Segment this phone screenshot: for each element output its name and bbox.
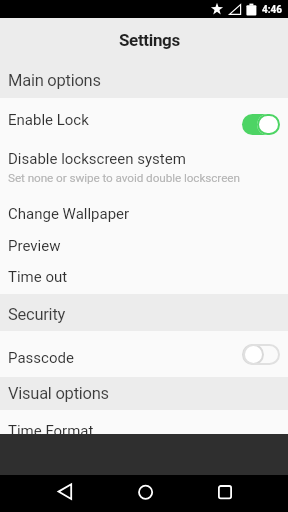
button[interactable]: Change Wallpaper [0,196,288,232]
staticText: 4:46 [262,4,283,16]
staticText: Change Wallpaper [8,205,130,223]
staticText: Set none or swipe to avoid double locksc… [8,171,240,185]
staticText: Time Format [8,422,94,434]
staticText: Settings [119,30,180,50]
staticText: Passcode [8,349,74,367]
button[interactable] [0,475,96,512]
button[interactable] [96,475,192,512]
button[interactable]: Time Format [0,410,288,434]
staticText: Visual options [8,384,109,403]
staticText: Main options [8,71,101,90]
button[interactable]: Passcode [0,331,288,377]
button[interactable]: Enable Lock [0,98,288,142]
staticText: Security [8,305,66,324]
staticText: Enable Lock [8,111,89,129]
button[interactable]: Time out [0,260,288,294]
button[interactable] [192,475,288,512]
button[interactable]: Disable lockscreen system [0,142,288,196]
staticText: Preview [8,237,61,255]
staticText: Disable lockscreen system [8,150,186,168]
staticText: Time out [8,268,68,286]
button[interactable]: Preview [0,232,288,260]
